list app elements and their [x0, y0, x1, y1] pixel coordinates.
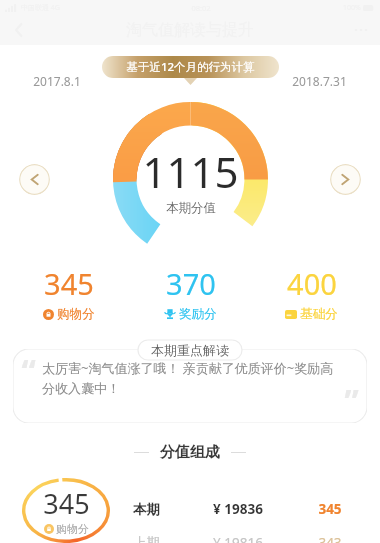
- button[interactable]: Previous period: [19, 164, 50, 195]
- button[interactable]: 400: [251, 264, 372, 322]
- button[interactable]: “: [13, 349, 367, 423]
- staticText: ”: [344, 379, 359, 423]
- button[interactable]: 基于近12个月的行为计算: [126, 59, 255, 75]
- staticText: 2018.7.31: [292, 73, 347, 89]
- staticText: 343: [318, 534, 342, 543]
- staticText: 345: [43, 485, 90, 522]
- staticText: 购物分: [57, 306, 95, 322]
- staticText: “: [21, 349, 36, 393]
- button[interactable]: 本期: [110, 500, 366, 518]
- staticText: 400: [287, 264, 337, 303]
- staticText: 上期: [133, 534, 160, 543]
- button[interactable]: 370: [130, 264, 251, 322]
- staticText: ¥ 19816: [213, 534, 263, 543]
- staticText: 本期分值: [166, 200, 216, 216]
- staticText: ¥ 19836: [213, 500, 263, 518]
- staticText: 分值组成: [160, 443, 220, 462]
- staticText: 2017.8.1: [33, 73, 81, 89]
- staticText: 1115: [142, 143, 239, 200]
- staticText: 太厉害~淘气值涨了哦！ 亲贡献了优质评价~奖励高分收入囊中！: [42, 359, 341, 397]
- staticText: 370: [166, 264, 216, 303]
- staticText: 奖励分: [179, 306, 217, 322]
- staticText: 345: [318, 500, 342, 518]
- staticText: 本期: [133, 501, 160, 518]
- button[interactable]: 上期: [110, 534, 366, 543]
- staticText: 基础分: [300, 306, 338, 322]
- staticText: 购物分: [56, 522, 89, 536]
- staticText: 基于近12个月的行为计算: [126, 59, 255, 75]
- staticText: 345: [44, 264, 94, 303]
- button[interactable]: Next period: [330, 164, 361, 195]
- button[interactable]: 345: [8, 264, 130, 322]
- staticText: 本期重点解读: [151, 342, 229, 358]
